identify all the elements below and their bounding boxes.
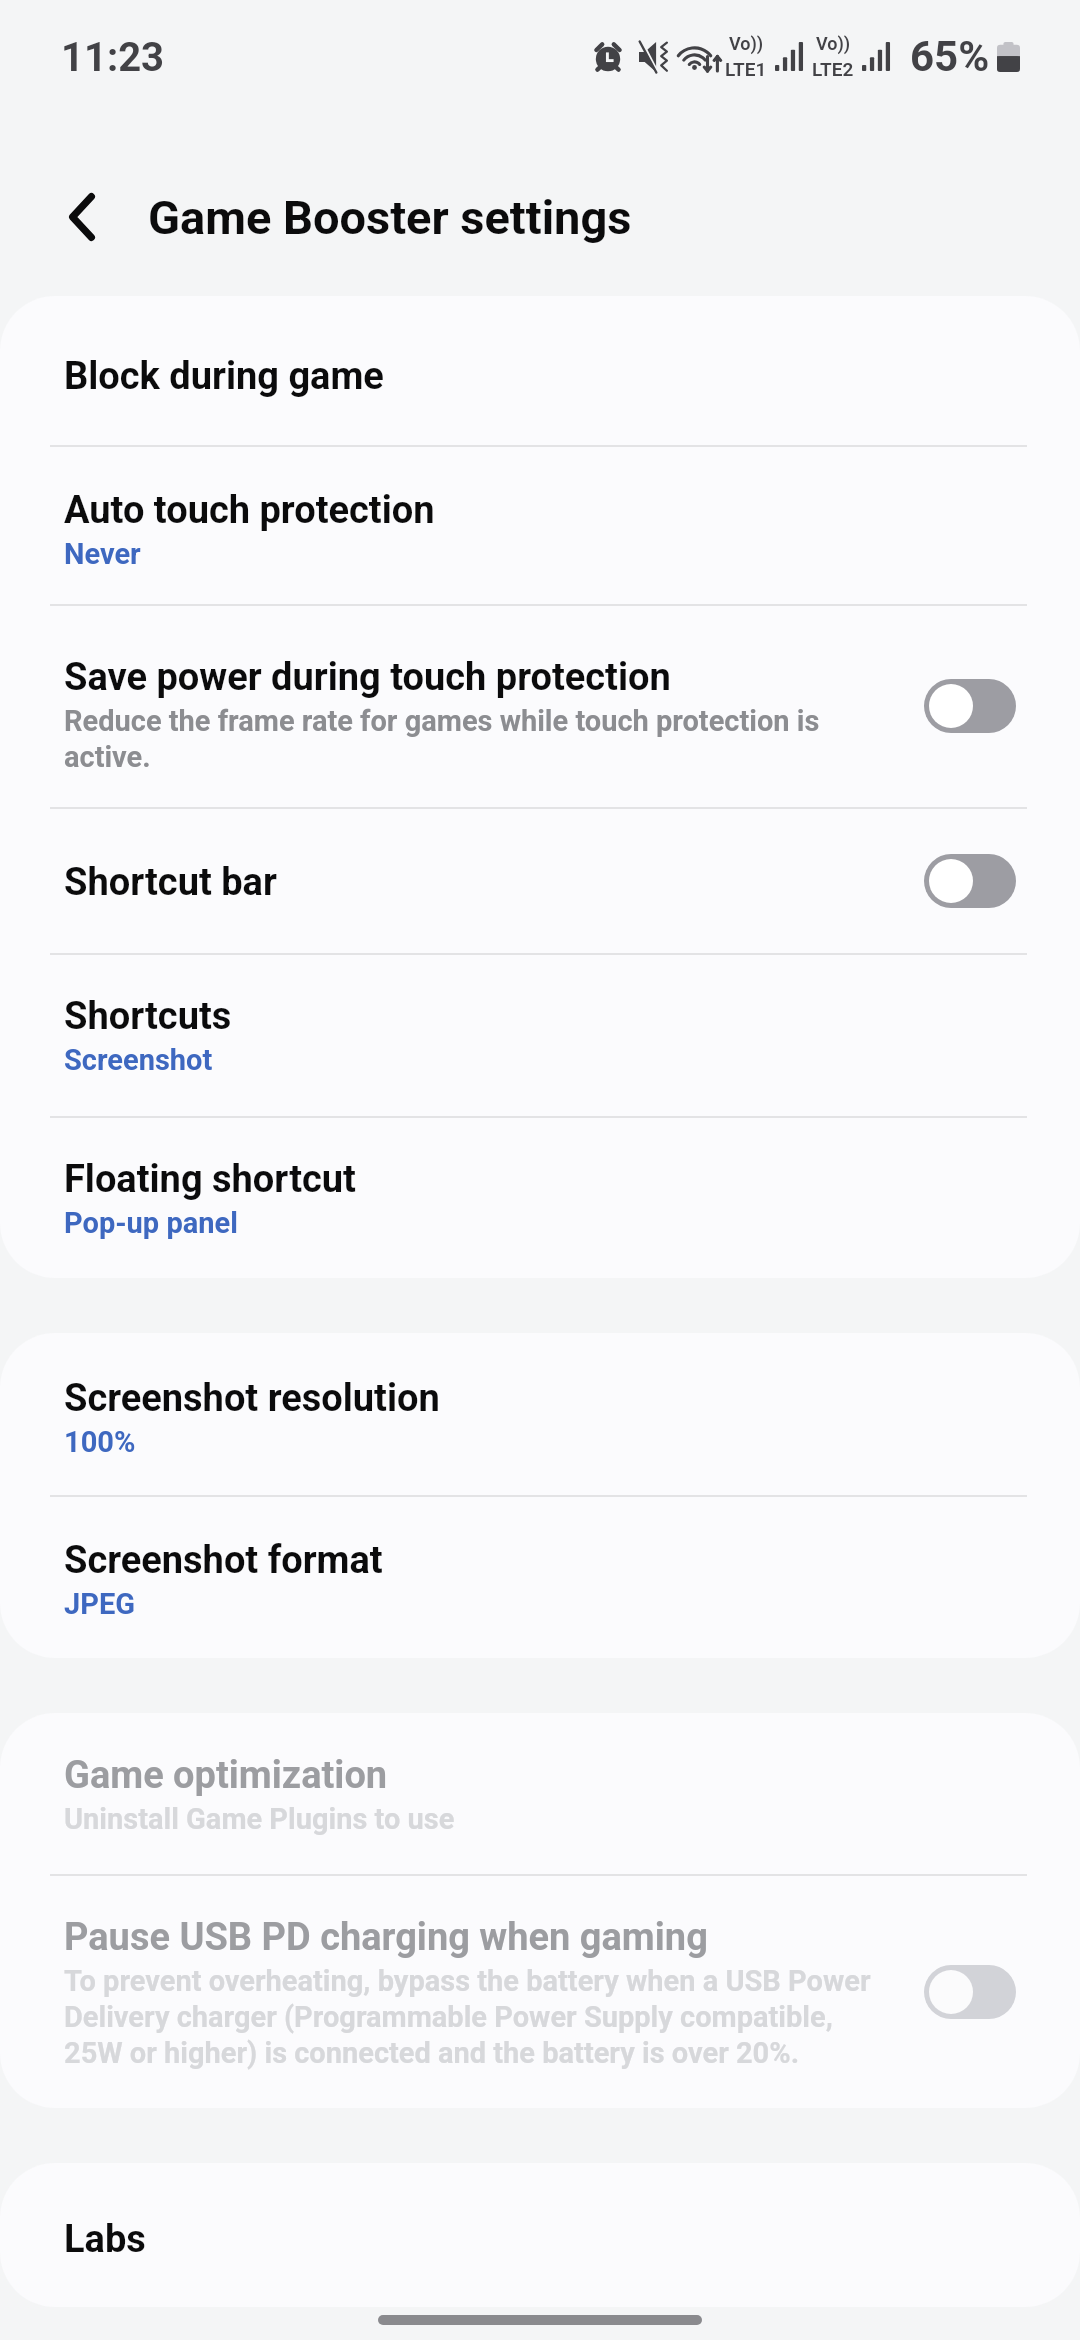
staticText: Auto touch protection — [64, 488, 435, 533]
staticText: Block during game — [64, 354, 384, 399]
button[interactable]: Shortcut bar — [0, 809, 1080, 952]
other: Battery 65 percent — [997, 42, 1020, 72]
staticText: 65% — [910, 32, 990, 81]
staticText: 11:23 — [61, 34, 165, 81]
staticText: Game optimization — [64, 1753, 388, 1798]
staticText: Labs — [64, 2217, 146, 2262]
staticText: Floating shortcut — [64, 1157, 356, 1202]
staticText: Uninstall Game Plugins to use — [64, 1802, 455, 1836]
button[interactable]: Block during game — [0, 296, 1080, 444]
button[interactable]: Toggle off — [924, 679, 1016, 733]
staticText: Vo)) — [816, 33, 851, 54]
staticText: Shortcuts — [64, 994, 232, 1039]
button[interactable]: Game optimization — [0, 1713, 1080, 1873]
staticText: Screenshot format — [64, 1538, 383, 1583]
button[interactable]: Shortcuts — [0, 955, 1080, 1115]
staticText: LTE1 — [725, 58, 767, 80]
staticText: Screenshot — [64, 1043, 213, 1077]
staticText: Game Booster settings — [148, 190, 632, 245]
button[interactable]: Toggle off — [924, 854, 1016, 908]
staticText: JPEG — [64, 1587, 135, 1621]
staticText: Screenshot resolution — [64, 1376, 440, 1421]
button[interactable]: Floating shortcut — [0, 1118, 1080, 1278]
staticText: Reduce the frame rate for games while to… — [64, 704, 824, 774]
staticText: 100% — [64, 1425, 136, 1459]
button[interactable]: Navigate up — [12, 147, 152, 287]
staticText: Pause USB PD charging when gaming — [64, 1915, 708, 1960]
staticText: Pop-up panel — [64, 1206, 238, 1240]
button[interactable]: Labs — [0, 2163, 1080, 2307]
staticText: Shortcut bar — [64, 860, 277, 905]
staticText: Save power during touch protection — [64, 655, 671, 700]
other: Wi-Fi connected — [679, 41, 722, 72]
staticText: To prevent overheating, bypass the batte… — [64, 1964, 874, 2070]
button[interactable]: Save power during touch protection — [0, 606, 1080, 806]
button[interactable]: Pause USB PD charging when gaming — [0, 1876, 1080, 2108]
staticText: Vo)) — [729, 33, 764, 54]
button[interactable]: Screenshot resolution — [0, 1333, 1080, 1494]
staticText: LTE2 — [812, 58, 854, 80]
staticText: Never — [64, 537, 141, 571]
button[interactable]: Toggle off — [924, 1965, 1016, 2019]
other: Alarm set — [594, 42, 622, 72]
button[interactable]: Screenshot format — [0, 1497, 1080, 1658]
button[interactable]: Auto touch protection — [0, 447, 1080, 603]
other: Sound off, vibrate — [639, 42, 669, 72]
